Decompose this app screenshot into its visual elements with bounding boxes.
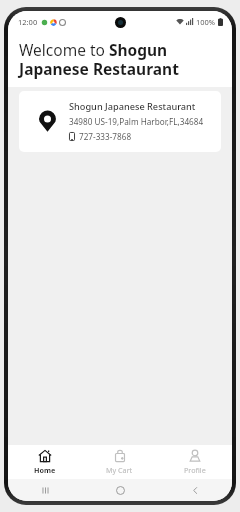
button[interactable]: My Cart bbox=[82, 446, 157, 478]
button[interactable]: Profile bbox=[157, 446, 232, 478]
button[interactable]: Location bbox=[19, 91, 221, 152]
staticText: 12:00 bbox=[18, 17, 38, 27]
staticText: Profile bbox=[184, 465, 206, 475]
staticText: 34980 US-19,Palm Harbor,FL,34684 bbox=[69, 116, 204, 127]
button[interactable]: Home bbox=[109, 479, 131, 501]
staticText: 727-333-7868 bbox=[79, 131, 132, 142]
staticText: Shogun Japanese Restaurant bbox=[69, 100, 196, 113]
button[interactable]: Recent apps bbox=[34, 479, 56, 501]
button[interactable]: 727-333-7868 bbox=[69, 130, 132, 143]
staticText: Home bbox=[34, 465, 56, 475]
button[interactable]: Back bbox=[184, 479, 206, 501]
staticText: 100% bbox=[196, 17, 216, 27]
staticText: My Cart bbox=[106, 465, 133, 475]
staticText: Welcome to Shogun Japanese Restaurant bbox=[19, 39, 221, 79]
other: Location bbox=[37, 111, 58, 132]
button[interactable]: Home bbox=[8, 446, 82, 478]
